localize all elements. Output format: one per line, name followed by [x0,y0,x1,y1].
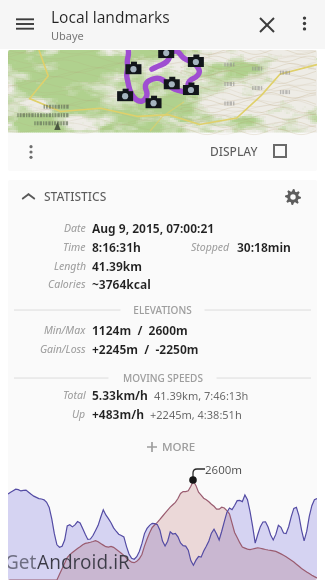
staticText: 1124m / 2600m [92,322,188,338]
button[interactable]: MORE [139,434,204,460]
staticText: MOVING SPEEDS [123,371,203,385]
button[interactable]: STATISTICS [8,180,317,212]
staticText: 30:18min [237,239,291,255]
staticText: Gain/Loss [40,342,86,356]
staticText: MORE [162,439,196,455]
button[interactable]: More options [292,11,316,35]
staticText: Total [63,388,86,402]
staticText: 41.39km [92,258,142,274]
button[interactable]: Menu [13,12,37,36]
staticText: Time [63,240,86,254]
staticText: 41.39km, 7:46:13h [154,388,249,403]
staticText: +2245m / -2250m [92,341,199,357]
staticText: Local landmarks [51,6,170,27]
button[interactable]: Close [254,12,279,37]
staticText: Android.iR [37,549,130,575]
staticText: Length [54,259,86,273]
staticText: Ubaye [51,28,84,43]
staticText: STATISTICS [44,188,107,204]
staticText: Stopped [191,240,230,254]
staticText: +483m/h [92,406,144,422]
staticText: 5.33km/h [92,387,148,403]
button[interactable]: Map options [18,139,44,165]
staticText: Min/Max [44,323,86,337]
staticText: ~3764kcal [92,276,151,292]
staticText: DISPLAY [210,143,258,159]
staticText: Up [72,407,86,421]
staticText: ELEVATIONS [133,303,192,317]
staticText: Date [64,221,86,235]
button[interactable]: DISPLAY [204,138,293,164]
staticText: Get [8,549,37,575]
staticText: Aug 9, 2015, 07:00:21 [92,220,215,236]
staticText: Calories [48,277,86,291]
staticText: 8:16:31h [92,239,141,255]
staticText: 2600m [205,462,243,478]
button[interactable]: Settings [280,184,306,210]
staticText: +2245m, 4:38:51h [150,407,242,422]
